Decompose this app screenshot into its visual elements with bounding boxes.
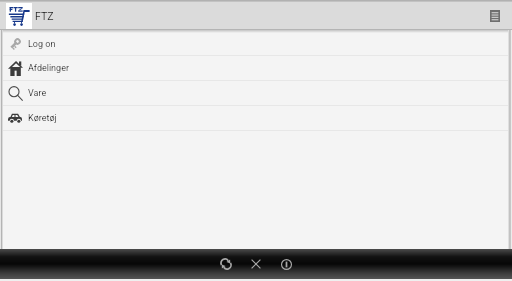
button[interactable]: Vare: [3, 81, 508, 105]
button[interactable]: Close: [241, 249, 271, 279]
button[interactable]: Køretøj: [3, 106, 508, 130]
button[interactable]: Afdelinger: [3, 56, 508, 80]
staticText: Log on: [28, 39, 56, 50]
staticText: Vare: [28, 88, 47, 99]
button[interactable]: Refresh: [211, 249, 241, 279]
button[interactable]: Log on: [3, 33, 508, 55]
staticText: FTZ: [35, 10, 54, 22]
button[interactable]: Menu: [481, 2, 509, 30]
button[interactable]: Info: [271, 249, 301, 279]
staticText: Afdelinger: [28, 63, 69, 74]
staticText: Køretøj: [28, 113, 57, 124]
